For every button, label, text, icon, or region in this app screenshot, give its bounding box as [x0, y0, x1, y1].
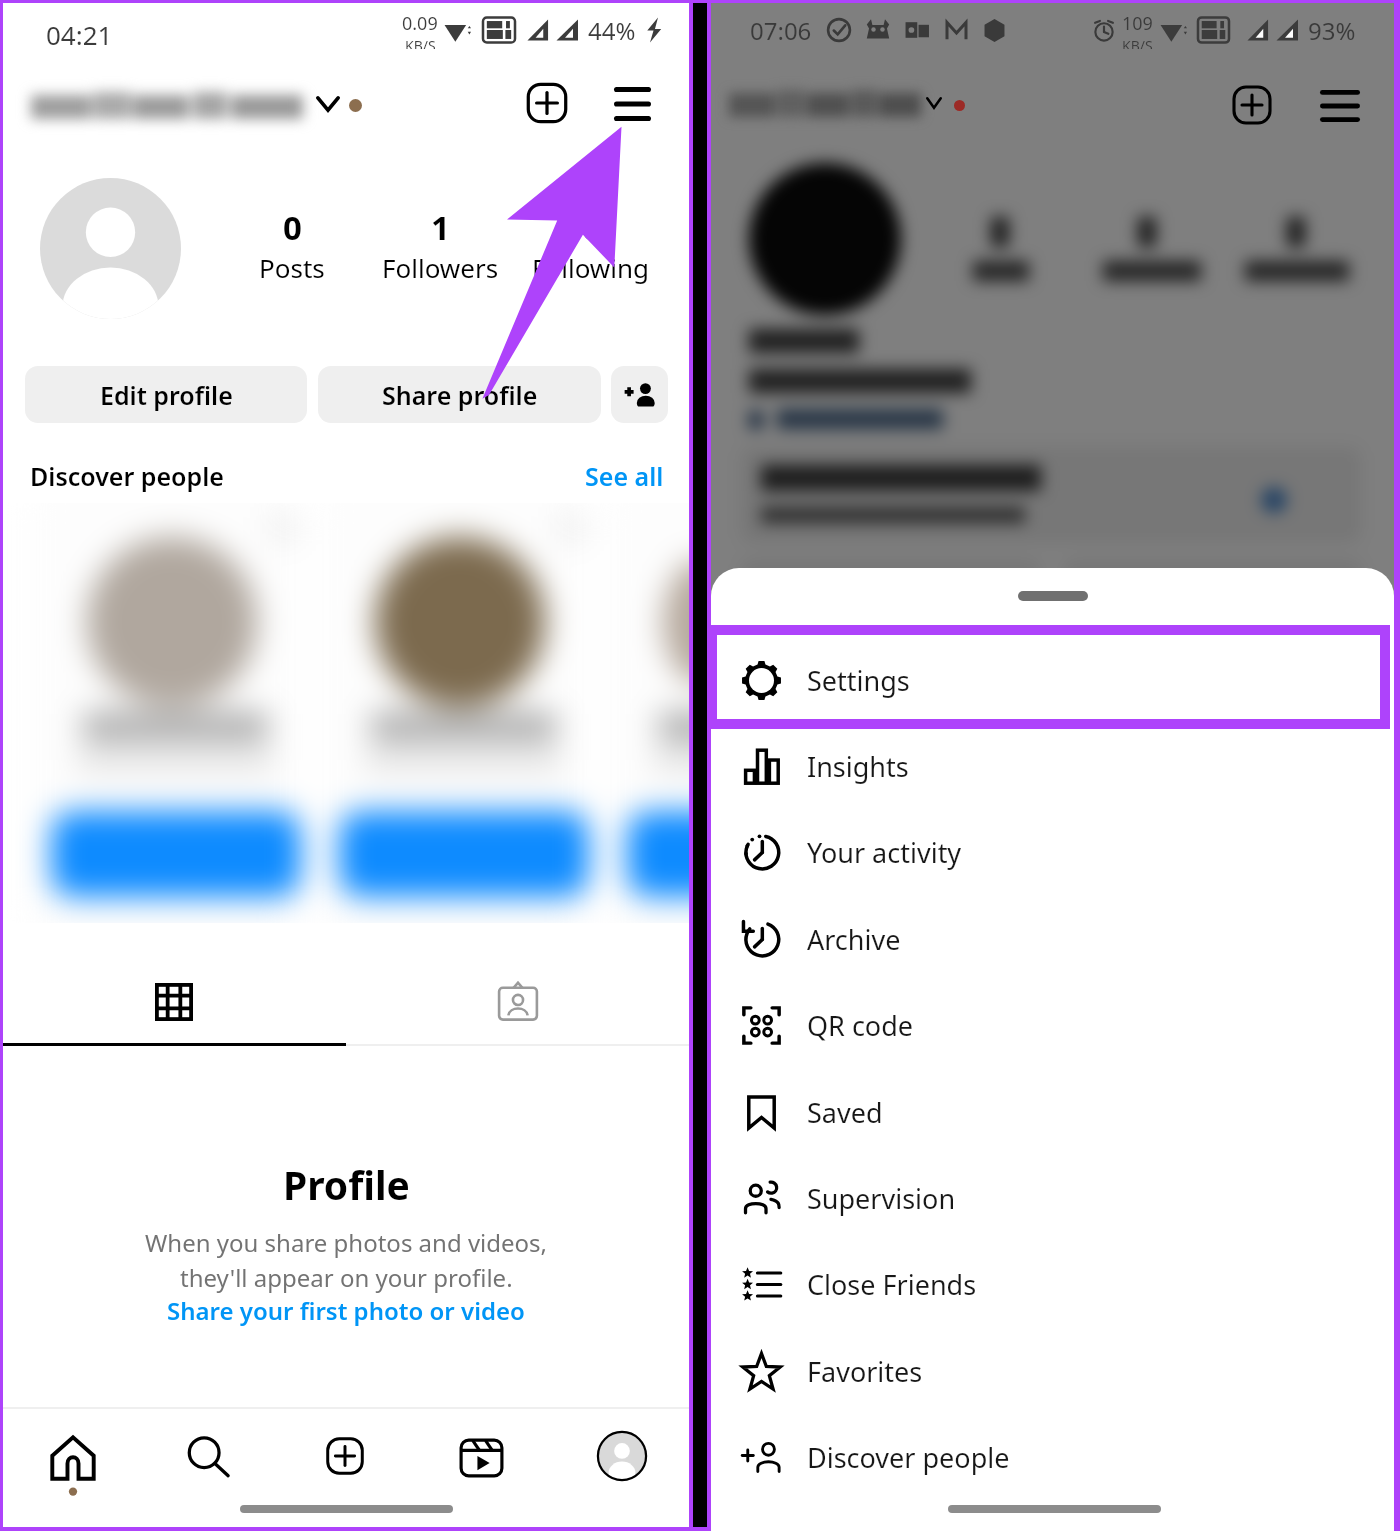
button[interactable]: Posts grid — [3, 958, 346, 1046]
button[interactable]: Add people — [611, 366, 668, 423]
staticText: 109 — [1122, 11, 1153, 36]
staticText: 0.09 — [402, 11, 438, 36]
button[interactable]: 0 — [217, 205, 367, 285]
staticText: KB/S — [1122, 36, 1153, 49]
staticText: Discover people — [30, 459, 224, 493]
staticText: Share profile — [382, 378, 538, 412]
button[interactable]: Favorites — [711, 1328, 1394, 1414]
button[interactable]: Reels — [431, 1413, 532, 1513]
staticText: Following — [532, 250, 650, 285]
button[interactable]: Home — [25, 1413, 121, 1513]
staticText: QR code — [807, 1007, 914, 1044]
button[interactable]: Settings — [711, 637, 1394, 723]
button[interactable]: Insights — [711, 723, 1394, 809]
button[interactable]: Archive — [711, 896, 1394, 982]
staticText: 0 — [582, 205, 601, 250]
staticText: Your activity — [807, 834, 962, 871]
button[interactable]: Search — [159, 1413, 257, 1513]
staticText: Supervision — [807, 1180, 956, 1217]
staticText: Posts — [259, 250, 325, 285]
staticText: Settings — [807, 662, 910, 699]
staticText: Profile — [283, 1158, 410, 1211]
button[interactable]: Your activity — [711, 809, 1394, 895]
staticText: they'll appear on your profile. — [180, 1261, 513, 1294]
button[interactable]: Menu — [597, 69, 667, 139]
staticText: Archive — [807, 921, 901, 958]
button[interactable]: Profile — [569, 1413, 675, 1513]
staticText: 0 — [283, 205, 302, 250]
button[interactable]: Edit profile — [25, 366, 307, 423]
button[interactable]: See all — [585, 459, 664, 493]
button[interactable]: 0 — [516, 205, 666, 285]
staticText: KB/S — [405, 36, 436, 49]
staticText: Saved — [807, 1094, 883, 1131]
staticText: See all — [585, 459, 664, 493]
staticText: 93% — [1308, 14, 1356, 47]
button[interactable]: Create — [1217, 70, 1287, 140]
staticText: 44% — [588, 14, 636, 47]
button[interactable]: Menu — [1305, 71, 1375, 141]
button[interactable]: Create — [296, 1413, 394, 1513]
button[interactable]: Supervision — [711, 1155, 1394, 1241]
staticText: Insights — [807, 748, 909, 785]
staticText: Discover people — [807, 1439, 1010, 1476]
button[interactable]: Discover people — [711, 1414, 1394, 1500]
staticText: Close Friends — [807, 1266, 977, 1303]
staticText: Edit profile — [100, 378, 233, 412]
button[interactable]: Share profile — [318, 366, 601, 423]
staticText: Followers — [382, 250, 499, 285]
staticText: When you share photos and videos, — [145, 1226, 548, 1259]
staticText: Favorites — [807, 1353, 923, 1390]
button[interactable]: Share your first photo or video — [167, 1294, 525, 1327]
button[interactable]: Saved — [711, 1069, 1394, 1155]
staticText: Share your first photo or video — [167, 1294, 525, 1327]
button[interactable]: Tagged — [346, 958, 689, 1046]
button[interactable]: Close Friends — [711, 1241, 1394, 1327]
staticText: 07:06 — [750, 14, 812, 47]
button[interactable]: Create — [512, 68, 582, 138]
button[interactable]: 1 — [365, 205, 515, 285]
button[interactable]: QR code — [711, 982, 1394, 1068]
staticText: 1 — [431, 205, 450, 250]
staticText: 04:21 — [46, 17, 113, 52]
